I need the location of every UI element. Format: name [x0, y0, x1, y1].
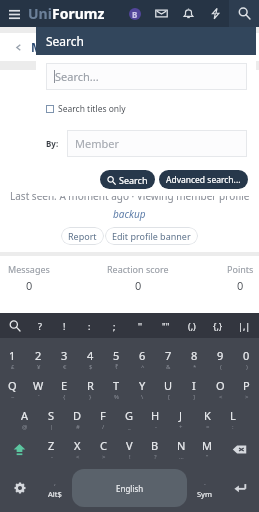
button[interactable]: Menu [4, 4, 24, 24]
button[interactable]: English [72, 469, 187, 507]
button[interactable]: Advanced search... [159, 170, 248, 189]
staticText: Y [139, 378, 146, 393]
button[interactable]: Alerts [175, 0, 202, 27]
staticText: } [89, 393, 92, 401]
button[interactable]: Inbox [148, 0, 175, 27]
button[interactable]: Search titles only [46, 103, 126, 115]
button[interactable]: N [168, 434, 194, 464]
button[interactable]: 8 [181, 344, 207, 374]
button[interactable]: {,} [205, 313, 231, 338]
button[interactable]: Backspace [220, 434, 259, 464]
staticText: _ [128, 423, 131, 431]
button[interactable]: M [194, 434, 220, 464]
button[interactable]: X [64, 434, 90, 464]
staticText: £ [11, 363, 15, 371]
staticText: > [245, 393, 249, 401]
button[interactable]: Messages [8, 263, 50, 293]
button[interactable]: |,| [231, 313, 257, 338]
button[interactable]: W [25, 374, 51, 404]
button[interactable]: "" [153, 313, 179, 338]
button[interactable]: J [168, 404, 194, 434]
button[interactable]: Members [14, 33, 259, 61]
button[interactable]: V [116, 434, 142, 464]
staticText: Last seen: A moment ago · Viewing member… [10, 189, 250, 203]
button[interactable]: F [90, 404, 116, 434]
button[interactable]: A [12, 404, 38, 434]
staticText: @ [22, 423, 28, 431]
button[interactable]: . [187, 464, 222, 512]
staticText: # [76, 423, 80, 431]
staticText: ! [63, 320, 66, 332]
button[interactable]: 6 [129, 344, 155, 374]
button[interactable]: Settings [2, 464, 37, 512]
button[interactable]: P [233, 374, 259, 404]
staticText: ( [220, 363, 222, 371]
button[interactable]: H [142, 404, 168, 434]
button[interactable]: 5 [103, 344, 129, 374]
staticText: Member [75, 136, 119, 151]
button[interactable]: , [37, 464, 72, 512]
button[interactable]: What's new [202, 0, 229, 27]
button[interactable]: E [51, 374, 77, 404]
button[interactable]: 0 [233, 344, 259, 374]
button[interactable]: C [90, 434, 116, 464]
button[interactable]: ? [27, 313, 52, 338]
button[interactable]: Report [61, 227, 104, 245]
staticText: X [74, 438, 81, 453]
button[interactable]: Edit profile banner [105, 227, 198, 245]
button[interactable]: 7 [155, 344, 181, 374]
button[interactable]: Shift [0, 434, 38, 464]
button[interactable]: Z [38, 434, 64, 464]
button[interactable]: U [155, 374, 181, 404]
staticText: Uni [28, 4, 52, 23]
staticText: \ [141, 393, 144, 401]
staticText: N [177, 438, 186, 453]
staticText: ¥ [37, 363, 41, 371]
button[interactable]: K [194, 404, 220, 434]
button[interactable]: Your account [121, 0, 148, 27]
staticText: L [230, 408, 236, 423]
button[interactable]: Member [67, 130, 247, 157]
staticText: M [202, 438, 212, 453]
button[interactable]: '' [127, 313, 153, 338]
staticText: ) [246, 363, 248, 371]
button[interactable]: Points [227, 263, 254, 293]
staticText: … [179, 453, 184, 461]
button[interactable]: Search... [46, 63, 247, 90]
staticText: 0 [26, 278, 33, 293]
button[interactable]: 3 [51, 344, 77, 374]
button[interactable]: 4 [77, 344, 103, 374]
button[interactable]: Search [100, 170, 155, 189]
button[interactable]: R [77, 374, 103, 404]
button[interactable]: (,) [179, 313, 205, 338]
button[interactable]: L [220, 404, 246, 434]
button[interactable]: Search emoji [2, 313, 27, 338]
button[interactable]: ; [102, 313, 127, 338]
staticText: - [155, 423, 157, 431]
staticText: Report [68, 230, 97, 242]
button[interactable]: Y [129, 374, 155, 404]
button[interactable]: T [103, 374, 129, 404]
button[interactable]: G [116, 404, 142, 434]
button[interactable]: Enter [222, 464, 257, 512]
button[interactable]: Search [229, 0, 259, 27]
button[interactable]: Q [0, 374, 25, 404]
button[interactable]: 1 [0, 344, 25, 374]
staticText: Z [48, 438, 55, 453]
button[interactable]: I [181, 374, 207, 404]
button[interactable]: Reaction score [107, 263, 169, 293]
staticText: Q [8, 378, 17, 393]
staticText: Sym [197, 489, 212, 499]
button[interactable]: 2 [25, 344, 51, 374]
button[interactable]: ! [52, 313, 77, 338]
button[interactable]: D [64, 404, 90, 434]
button[interactable]: O [207, 374, 233, 404]
staticText: Points [227, 263, 254, 275]
staticText: E [61, 378, 68, 393]
button[interactable]: B [142, 434, 168, 464]
staticText: O [216, 378, 225, 393]
button[interactable]: S [38, 404, 64, 434]
button[interactable]: 9 [207, 344, 233, 374]
staticText: 9 [217, 348, 224, 363]
button[interactable]: : [77, 313, 102, 338]
